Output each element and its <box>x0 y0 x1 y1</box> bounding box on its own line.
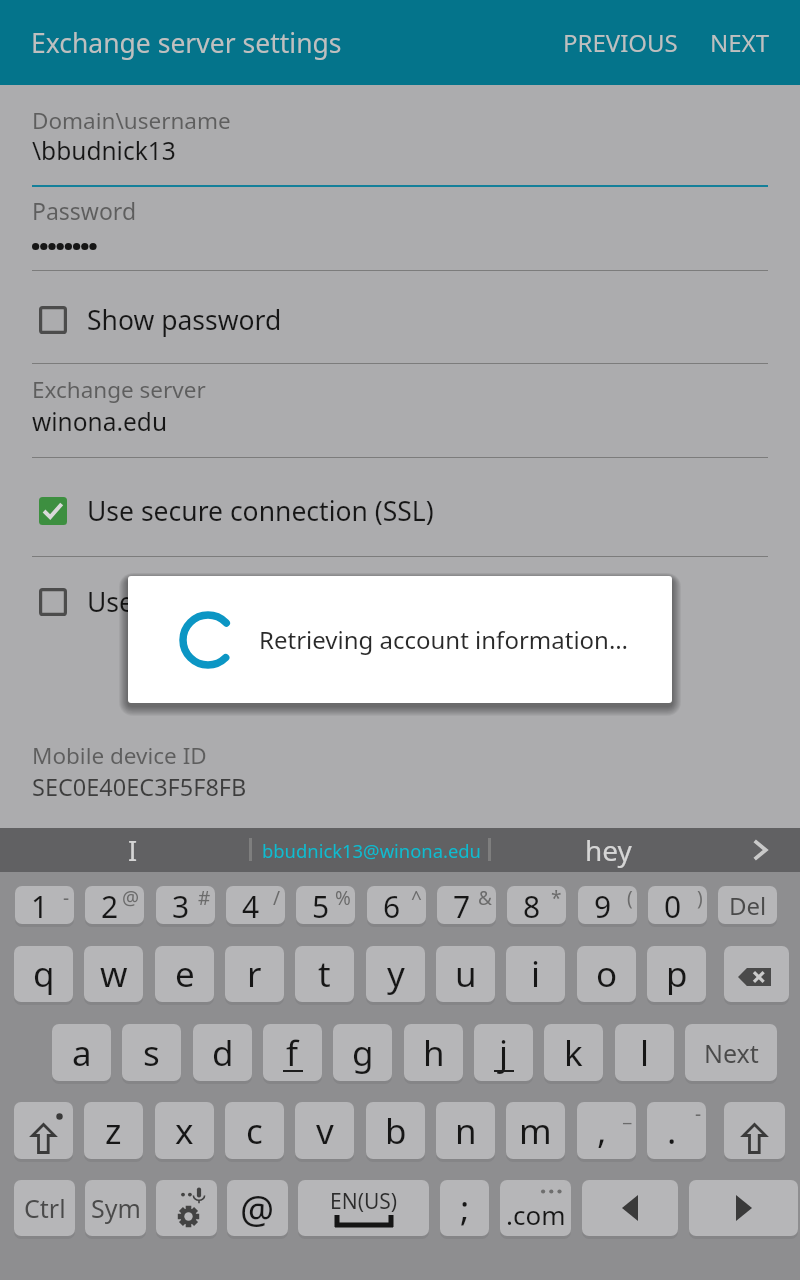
button[interactable]: m <box>506 1102 565 1159</box>
button[interactable]: u <box>436 946 495 1002</box>
staticText: u <box>455 950 477 998</box>
button[interactable]: space <box>298 1180 429 1236</box>
staticText: y <box>387 950 405 998</box>
button[interactable]: Next <box>685 1024 777 1081</box>
button[interactable]: 3 <box>156 886 215 924</box>
button[interactable]: gear <box>156 1180 217 1236</box>
staticText: 2 <box>101 886 119 924</box>
button[interactable]: Show password <box>0 276 800 364</box>
staticText: k <box>564 1029 583 1077</box>
button[interactable]: PREVIOUS <box>546 10 694 74</box>
button[interactable]: v <box>295 1102 354 1159</box>
staticText: , <box>597 1107 607 1155</box>
button[interactable]: j <box>474 1024 533 1081</box>
button[interactable]: 8 <box>507 886 566 924</box>
button[interactable]: Del <box>718 886 777 924</box>
button[interactable]: Ctrl <box>14 1180 75 1236</box>
staticText: - <box>63 886 70 911</box>
staticText: j <box>499 1029 509 1077</box>
staticText: v <box>316 1107 334 1155</box>
button[interactable]: More suggestions <box>722 828 796 872</box>
staticText: b <box>385 1107 407 1155</box>
button[interactable]: q <box>14 946 73 1002</box>
button[interactable]: left <box>582 1180 678 1236</box>
button[interactable]: s <box>122 1024 181 1081</box>
staticText: @ <box>122 886 140 911</box>
button[interactable]: 0 <box>648 886 707 924</box>
button[interactable]: Use secure connection (SSL) <box>0 467 800 555</box>
staticText: Retrieving account information… <box>259 623 628 656</box>
staticText: Password <box>32 195 137 226</box>
staticText: EN(US) <box>330 1187 398 1216</box>
staticText: PREVIOUS <box>563 26 678 59</box>
staticText: e <box>175 950 195 998</box>
button[interactable]: 9 <box>578 886 637 924</box>
button[interactable]: n <box>436 1102 495 1159</box>
button[interactable]: I <box>0 828 251 872</box>
button[interactable]: k <box>544 1024 603 1081</box>
button[interactable]: y <box>366 946 425 1002</box>
button[interactable]: o <box>577 946 636 1002</box>
button[interactable]: .com <box>500 1180 571 1236</box>
button[interactable]: g <box>333 1024 392 1081</box>
button[interactable]: w <box>84 946 143 1002</box>
button[interactable]: z <box>84 1102 143 1159</box>
button[interactable]: ; <box>440 1180 489 1236</box>
staticText: d <box>212 1029 234 1077</box>
button[interactable]: @ <box>227 1180 288 1236</box>
staticText: 7 <box>453 886 471 924</box>
button[interactable]: e <box>155 946 214 1002</box>
button[interactable]: shiftdot <box>14 1102 73 1159</box>
staticText: i <box>531 950 541 998</box>
button[interactable]: , <box>577 1102 636 1159</box>
staticText: z <box>105 1107 122 1155</box>
staticText: % <box>335 886 351 911</box>
staticText: p <box>666 950 688 998</box>
staticText: @ <box>240 1182 275 1234</box>
button[interactable]: l <box>615 1024 674 1081</box>
staticText: n <box>455 1107 477 1155</box>
button[interactable]: shift <box>724 1102 785 1159</box>
button[interactable]: 6 <box>367 886 426 924</box>
button[interactable]: . <box>647 1102 706 1159</box>
staticText: Use client certificate <box>87 584 339 620</box>
staticText: g <box>352 1029 374 1077</box>
button[interactable]: backspace <box>724 946 789 1002</box>
button[interactable]: bbudnick13@winona.edu <box>252 828 490 872</box>
button[interactable]: p <box>647 946 706 1002</box>
button[interactable]: Sym <box>85 1180 146 1236</box>
staticText: Show password <box>87 302 282 338</box>
button[interactable]: Use client certificate <box>0 558 800 646</box>
button[interactable]: f <box>263 1024 322 1081</box>
button[interactable]: 1 <box>15 886 74 924</box>
staticText: ; <box>460 1184 470 1232</box>
button[interactable]: 2 <box>85 886 144 924</box>
staticText: Ctrl <box>24 1191 66 1225</box>
button[interactable]: d <box>193 1024 252 1081</box>
staticText: w <box>100 950 128 998</box>
button[interactable]: h <box>404 1024 463 1081</box>
staticText: ( <box>627 886 633 911</box>
staticText: I <box>128 832 138 869</box>
button[interactable]: right <box>689 1180 798 1236</box>
button[interactable]: i <box>506 946 565 1002</box>
button[interactable]: 4 <box>226 886 285 924</box>
staticText: Exchange server <box>32 374 206 405</box>
staticText: r <box>247 950 262 998</box>
button[interactable]: t <box>295 946 354 1002</box>
button[interactable]: hey <box>492 828 726 872</box>
button[interactable]: b <box>366 1102 425 1159</box>
staticText: .com <box>506 1197 566 1232</box>
staticText: Mobile device ID <box>32 740 207 771</box>
button[interactable]: 5 <box>296 886 355 924</box>
staticText: - <box>695 1102 702 1127</box>
button[interactable]: r <box>225 946 284 1002</box>
button[interactable]: c <box>225 1102 284 1159</box>
button[interactable]: 7 <box>437 886 496 924</box>
staticText: ) <box>697 886 703 911</box>
staticText: Sym <box>91 1191 141 1225</box>
staticText: 5 <box>312 886 330 924</box>
button[interactable]: a <box>52 1024 111 1081</box>
button[interactable]: NEXT <box>694 10 784 74</box>
button[interactable]: x <box>155 1102 214 1159</box>
